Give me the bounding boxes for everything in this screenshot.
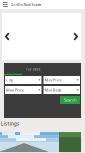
button[interactable]: City (5, 76, 41, 84)
button[interactable]: Previous slide (2, 29, 13, 44)
staticText: City (6, 77, 13, 83)
button[interactable]: Min Beds (43, 86, 80, 94)
button[interactable]: Menu (1, 1, 9, 8)
button[interactable]: Search (60, 96, 80, 104)
staticText: Griffin Real Estate (11, 2, 42, 7)
button[interactable]: Min Price (43, 76, 80, 84)
button[interactable]: Griffin Real Estate (9, 2, 43, 7)
staticText: Listings (0, 120, 19, 127)
staticText: Max Price (6, 87, 24, 93)
staticText: Search (64, 97, 76, 103)
staticText: Min Price (44, 77, 61, 83)
button[interactable]: Max Price (5, 86, 41, 94)
staticText: Min Beds (44, 87, 61, 93)
staticText: For Rent (26, 66, 40, 72)
button[interactable]: For Rent (22, 63, 44, 75)
button[interactable]: Next slide (70, 29, 81, 44)
button[interactable]: Buy (4, 63, 22, 75)
